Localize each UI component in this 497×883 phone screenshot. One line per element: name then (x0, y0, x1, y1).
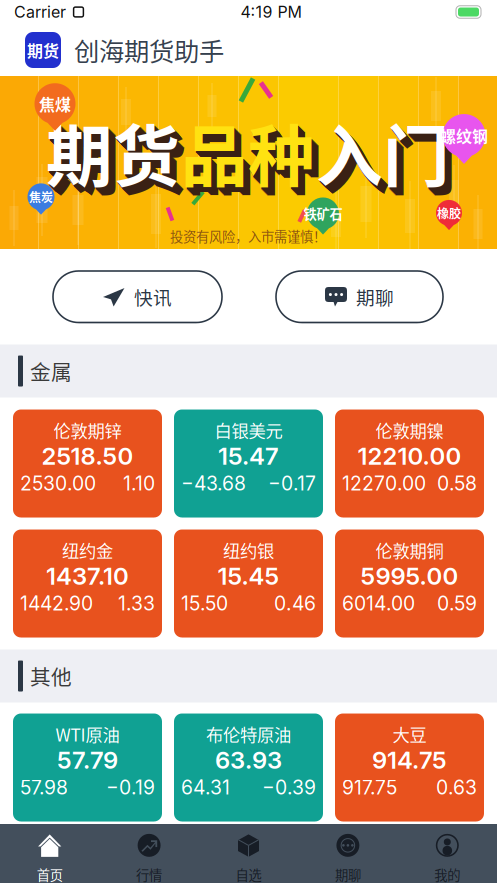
staticText: 品种 (182, 106, 316, 202)
staticText: 螺纹钢 (440, 124, 488, 147)
staticText: 期货 (46, 104, 180, 200)
staticText: 期货 (53, 112, 187, 208)
staticText: 63.93 (215, 745, 282, 774)
staticText: 品种 (181, 104, 315, 200)
staticText: 15.45 (217, 561, 279, 590)
staticText: 期聊 (356, 283, 394, 310)
staticText: 入门 (323, 112, 457, 208)
button[interactable]: 大豆 (335, 713, 484, 821)
staticText: 入门 (319, 108, 453, 204)
staticText: 品种 (188, 112, 322, 208)
staticText: 行情 (136, 865, 162, 883)
staticText: 1.10 (123, 472, 155, 495)
staticText: 1437.10 (46, 561, 129, 590)
button[interactable]: 白银美元 (174, 409, 323, 517)
button[interactable]: 我的 (398, 824, 497, 883)
staticText: 0.46 (274, 592, 316, 615)
staticText: 品种 (183, 107, 317, 203)
staticText: WTI原油 (55, 721, 119, 747)
staticText: 12210.00 (357, 441, 461, 470)
staticText: 6014.00 (342, 592, 415, 615)
staticText: 入门 (316, 104, 450, 200)
staticText: 2518.50 (41, 441, 133, 470)
staticText: 期货 (47, 106, 181, 202)
staticText: 期货 (48, 107, 182, 203)
button[interactable]: 快讯 (53, 271, 222, 322)
button[interactable]: 自选 (199, 824, 298, 883)
staticText: 入门 (322, 111, 456, 207)
staticText: 首页 (37, 865, 63, 883)
staticText: 铁矿石 (303, 204, 342, 223)
staticText: 伦敦期镍 (375, 417, 443, 443)
staticText: 0.58 (437, 472, 477, 495)
staticText: −43.68 (181, 472, 246, 495)
staticText: 期货 (49, 108, 183, 204)
staticText: 64.31 (181, 776, 230, 799)
staticText: 伦敦期铜 (375, 537, 443, 563)
staticText: 57.98 (20, 776, 68, 799)
button[interactable]: 期聊 (276, 271, 443, 322)
staticText: 2530.00 (20, 472, 96, 495)
staticText: 917.75 (342, 776, 397, 799)
staticText: 品种 (186, 110, 320, 206)
staticText: 焦炭 (29, 188, 53, 206)
button[interactable]: 伦敦期镍 (335, 409, 484, 517)
button[interactable]: 纽约银 (174, 529, 323, 637)
staticText: 期货 (51, 110, 185, 206)
button[interactable]: 伦敦期铜 (335, 529, 484, 637)
staticText: 15.47 (218, 441, 279, 470)
staticText: 入门 (320, 109, 454, 205)
staticText: Carrier (14, 2, 66, 22)
staticText: −0.17 (268, 472, 316, 495)
button[interactable]: 行情 (99, 824, 199, 883)
staticText: 我的 (434, 865, 460, 883)
staticText: 创海期货助手 (74, 32, 224, 68)
staticText: 期货 (50, 109, 184, 205)
staticText: 15.50 (181, 592, 228, 615)
staticText: 5995.00 (360, 561, 458, 590)
staticText: 入门 (318, 107, 452, 203)
staticText: 期货 (52, 111, 186, 207)
staticText: 期聊 (335, 865, 361, 883)
staticText: 快讯 (134, 283, 172, 310)
staticText: 投资有风险，入市需谨慎！ (170, 226, 326, 246)
staticText: −0.19 (106, 776, 155, 799)
staticText: 品种 (184, 108, 318, 204)
button[interactable]: 伦敦期锌 (13, 409, 162, 517)
staticText: 布伦特原油 (206, 721, 291, 747)
staticText: 白银美元 (214, 417, 282, 443)
button[interactable]: 布伦特原油 (174, 713, 323, 821)
staticText: 伦敦期锌 (53, 417, 121, 443)
staticText: 大豆 (392, 721, 426, 747)
staticText: 0.59 (437, 592, 477, 615)
staticText: 焦煤 (39, 92, 71, 115)
staticText: 入门 (321, 110, 455, 206)
staticText: 1.33 (118, 592, 155, 615)
staticText: 57.79 (57, 745, 118, 774)
button[interactable]: 首页 (0, 824, 99, 883)
staticText: 金属 (30, 356, 72, 386)
staticText: 12270.00 (342, 472, 426, 495)
button[interactable]: 纽约金 (13, 529, 162, 637)
staticText: 1442.90 (20, 592, 93, 615)
staticText: 品种 (187, 111, 321, 207)
staticText: 其他 (30, 661, 72, 691)
staticText: 0.63 (436, 776, 477, 799)
staticText: 期货 (27, 38, 59, 62)
button[interactable]: WTI原油 (13, 713, 162, 821)
staticText: 4:19 PM (240, 2, 301, 22)
staticText: 纽约银 (223, 537, 274, 563)
staticText: −0.39 (262, 776, 316, 799)
staticText: 入门 (317, 106, 451, 202)
staticText: 自选 (235, 865, 261, 883)
staticText: 品种 (185, 109, 319, 205)
button[interactable]: 期聊 (298, 824, 398, 883)
staticText: 914.75 (372, 745, 447, 774)
staticText: 纽约金 (62, 537, 113, 563)
staticText: 橡胶 (437, 204, 461, 222)
